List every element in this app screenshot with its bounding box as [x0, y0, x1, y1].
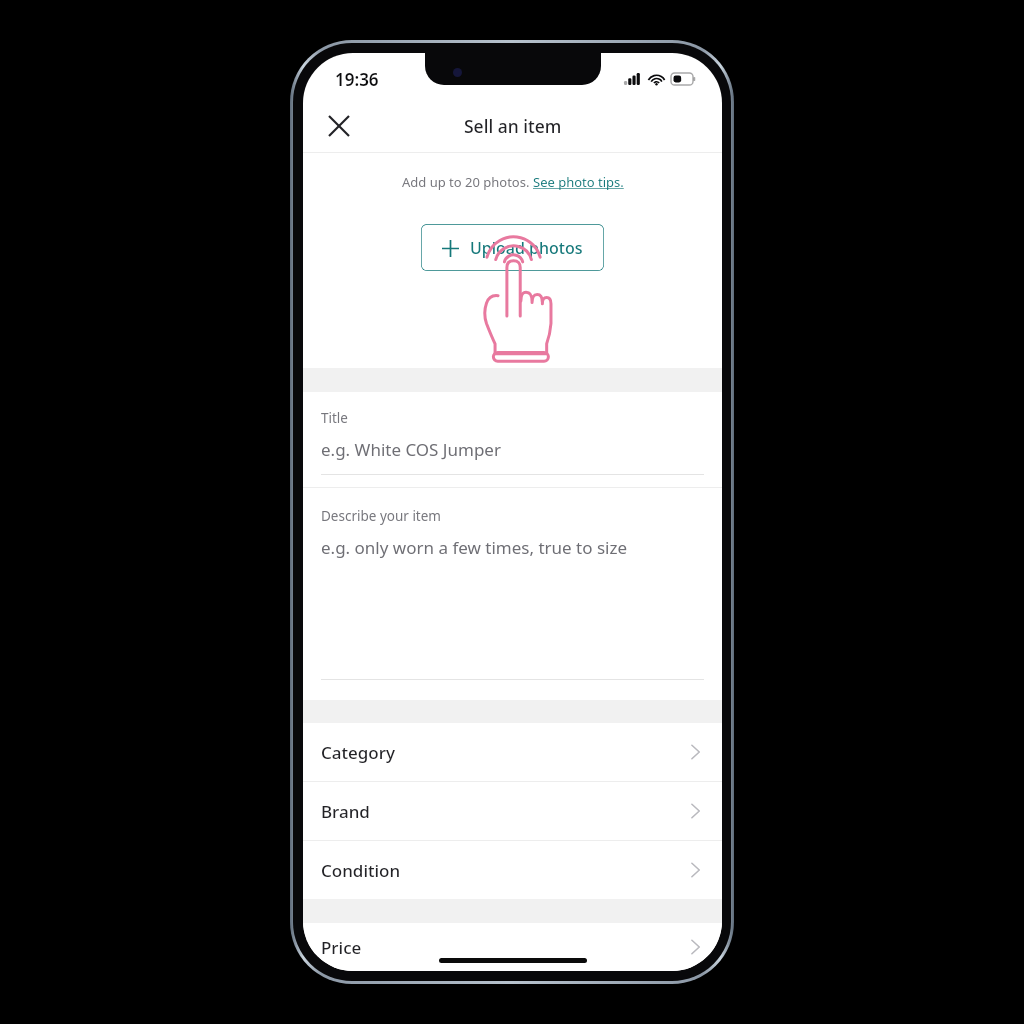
staticText: Add up to 20 photos. — [402, 173, 533, 191]
staticText: e.g. White COS Jumper — [321, 438, 501, 461]
staticText: Category — [321, 741, 395, 764]
staticText: Title — [321, 409, 348, 427]
button[interactable]: Condition — [303, 841, 722, 899]
staticText: Describe your item — [321, 507, 441, 525]
button[interactable]: See photo tips. — [533, 173, 624, 191]
button[interactable]: Close — [316, 103, 362, 149]
button[interactable]: Describe your item — [303, 488, 722, 700]
button[interactable]: Upload photos — [421, 224, 604, 271]
staticText: e.g. only worn a few times, true to size — [321, 536, 628, 559]
button[interactable]: Brand — [303, 782, 722, 840]
staticText: Upload photos — [470, 237, 583, 259]
staticText: Sell an item — [464, 114, 562, 138]
button[interactable]: Category — [303, 723, 722, 781]
staticText: Price — [321, 936, 362, 959]
staticText: Condition — [321, 859, 401, 882]
button[interactable]: Title — [303, 392, 722, 487]
button[interactable]: Price — [303, 923, 722, 971]
staticText: 19:36 — [335, 68, 379, 91]
staticText: Brand — [321, 800, 370, 823]
